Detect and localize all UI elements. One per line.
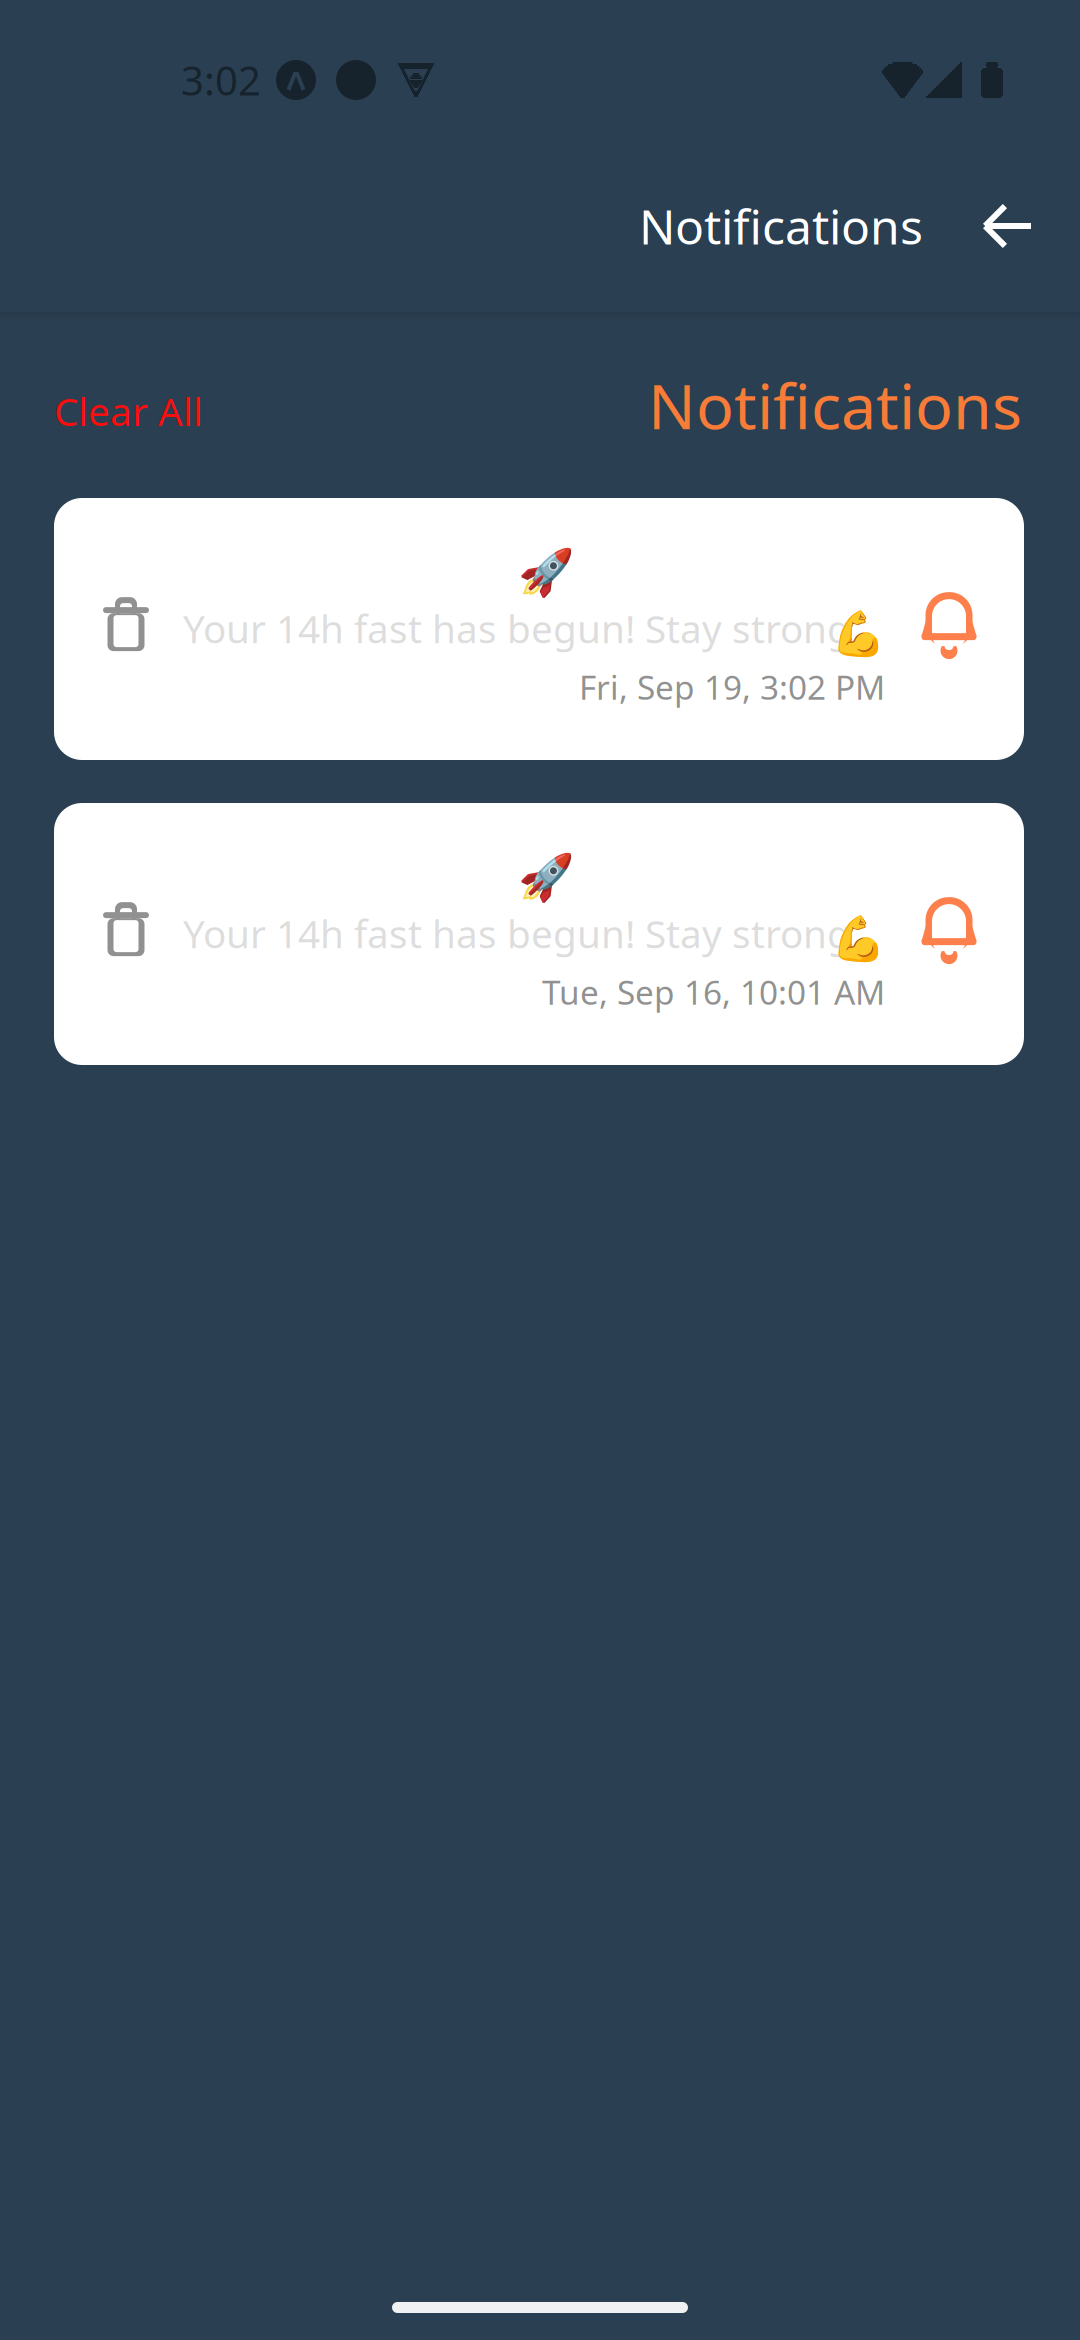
staticText: Clear All — [54, 385, 203, 437]
button[interactable]: 🚀 — [54, 498, 1024, 760]
staticText: Your 14h fast has begun! Stay strong — [183, 602, 851, 654]
staticText: 🚀 — [518, 851, 574, 904]
staticText: Notifications — [648, 362, 1022, 448]
staticText: Your 14h fast has begun! Stay strong — [183, 907, 851, 959]
staticText: 💪 — [831, 913, 886, 965]
button[interactable]: Back — [984, 202, 1032, 250]
staticText: 💪 — [831, 608, 886, 660]
staticText: Notifications — [639, 193, 923, 259]
staticText: 🚀 — [518, 546, 574, 599]
staticText: Tue, Sep 16, 10:01 AM — [542, 969, 885, 1014]
button[interactable]: 🚀 — [54, 803, 1024, 1065]
button[interactable]: Clear All — [56, 382, 205, 434]
staticText: 3:02 — [181, 53, 261, 107]
staticText: Fri, Sep 19, 3:02 PM — [579, 664, 885, 709]
